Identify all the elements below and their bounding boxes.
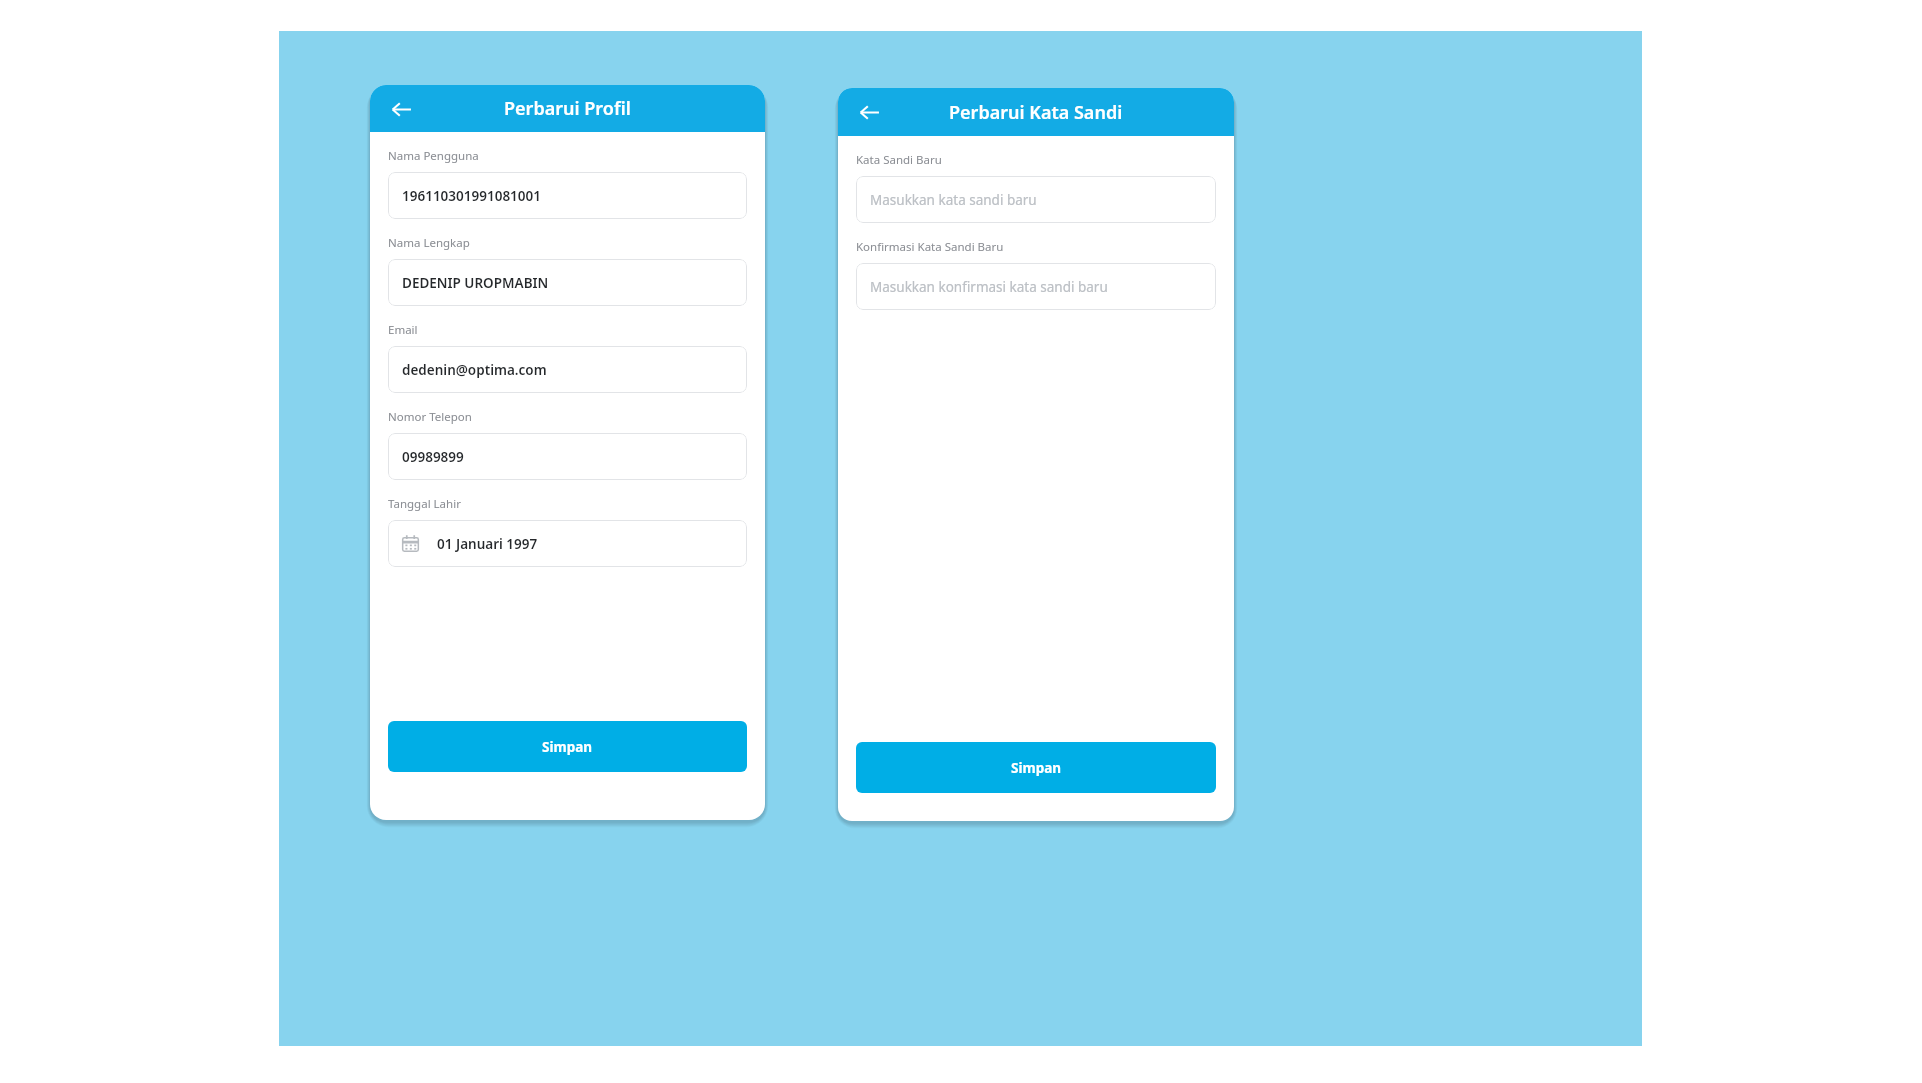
button[interactable]: Masukkan kata sandi baru — [856, 176, 1216, 223]
button[interactable]: dedenin@optima.com — [388, 346, 747, 393]
button[interactable]: Masukkan konfirmasi kata sandi baru — [856, 263, 1216, 310]
staticText: 09989899 — [402, 448, 464, 466]
button[interactable]: Simpan — [388, 721, 747, 772]
staticText: Perbarui Kata Sandi — [949, 100, 1123, 125]
staticText: Konfirmasi Kata Sandi Baru — [856, 239, 1004, 255]
staticText: Perbarui Profil — [504, 96, 631, 121]
staticText: 196110301991081001 — [402, 187, 541, 205]
staticText: Nama Pengguna — [388, 148, 479, 164]
staticText: Email — [388, 322, 418, 338]
staticText: DEDENIP UROPMABIN — [402, 274, 549, 292]
button[interactable]: Simpan — [856, 742, 1216, 793]
staticText: Kata Sandi Baru — [856, 152, 942, 168]
button[interactable]: 09989899 — [388, 433, 747, 480]
button[interactable]: 196110301991081001 — [388, 172, 747, 219]
button[interactable]: DEDENIP UROPMABIN — [388, 259, 747, 306]
staticText: Masukkan kata sandi baru — [870, 191, 1037, 209]
staticText: Simpan — [542, 738, 593, 756]
staticText: 01 Januari 1997 — [437, 535, 538, 553]
staticText: Tanggal Lahir — [388, 496, 461, 512]
button[interactable]: Back — [382, 90, 420, 128]
button[interactable]: 01 Januari 1997 — [388, 520, 747, 567]
button[interactable]: Back — [850, 93, 888, 131]
staticText: dedenin@optima.com — [402, 361, 547, 379]
staticText: Simpan — [1011, 759, 1062, 777]
staticText: Masukkan konfirmasi kata sandi baru — [870, 278, 1108, 296]
staticText: Nama Lengkap — [388, 235, 470, 251]
staticText: Nomor Telepon — [388, 409, 472, 425]
